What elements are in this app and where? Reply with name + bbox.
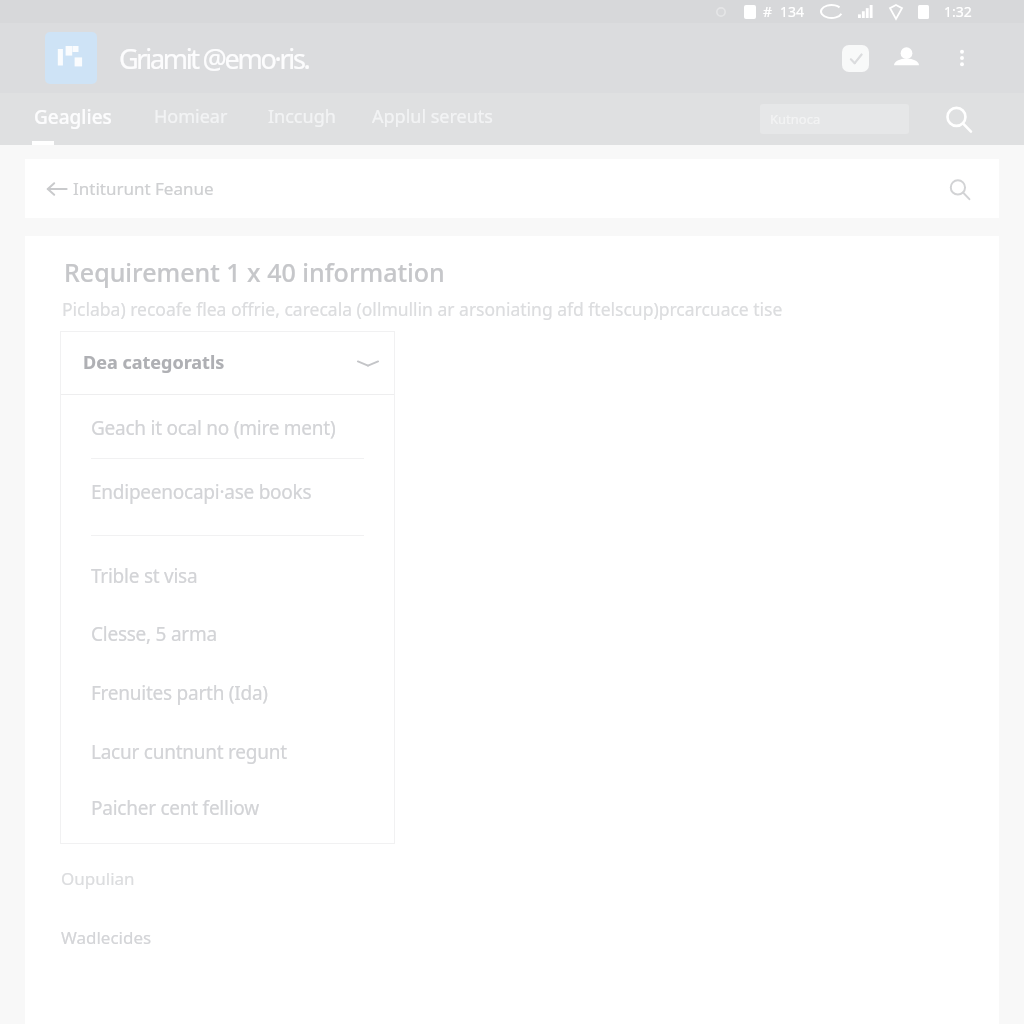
button[interactable]: Inccugh	[268, 93, 336, 145]
button[interactable]: Dea categoratls	[60, 331, 395, 394]
staticText: Geach it ocal no (mire ment)	[91, 415, 336, 441]
staticText: Geaglies	[34, 104, 112, 130]
button[interactable]: Trible st visa	[60, 551, 395, 601]
staticText: Applul sereuts	[372, 104, 493, 129]
button[interactable]: Lacur cuntnunt regunt	[60, 727, 395, 777]
staticText: Griamit @emo·ris.	[119, 40, 309, 77]
button[interactable]: More options	[940, 36, 984, 80]
button[interactable]: Search	[934, 95, 982, 143]
staticText: Clesse, 5 arma	[91, 621, 217, 647]
staticText: Trible st visa	[91, 563, 198, 589]
staticText: Piclaba) recoafe flea offrie, carecala (…	[62, 297, 783, 321]
button[interactable]: Applul sereuts	[372, 93, 493, 145]
button[interactable]: App icon	[45, 32, 97, 84]
staticText: Inccugh	[268, 104, 336, 129]
button[interactable]: Select all	[833, 36, 877, 80]
staticText: 1:32	[944, 2, 972, 21]
button[interactable]: Paicher cent felliow	[60, 783, 395, 833]
staticText: Endipeenocapi·ase books	[91, 479, 312, 505]
button[interactable]: Homiear	[154, 93, 228, 145]
staticText: Frenuites parth (Ida)	[91, 680, 268, 706]
staticText: Intiturunt Feanue	[73, 177, 214, 200]
staticText: Requirement 1 x 40 information	[64, 255, 445, 289]
staticText: 134	[780, 2, 805, 21]
button[interactable]: Back	[40, 172, 74, 206]
button[interactable]: Search	[940, 170, 978, 208]
button[interactable]: Account	[884, 36, 928, 80]
staticText: Dea categoratls	[83, 350, 225, 375]
staticText: Paicher cent felliow	[91, 795, 259, 821]
button[interactable]: Clesse, 5 arma	[60, 609, 395, 659]
staticText: Kutnoca	[770, 110, 821, 128]
button[interactable]: Geach it ocal no (mire ment)	[60, 403, 395, 453]
staticText: Wadlecides	[61, 926, 152, 949]
button[interactable]: Geaglies	[34, 93, 112, 145]
staticText: Homiear	[154, 104, 228, 129]
staticText: Oupulian	[61, 867, 135, 890]
staticText: #	[763, 2, 773, 21]
button[interactable]: Endipeenocapi·ase books	[60, 467, 395, 517]
staticText: Lacur cuntnunt regunt	[91, 739, 287, 765]
button[interactable]: Frenuites parth (Ida)	[60, 668, 395, 718]
